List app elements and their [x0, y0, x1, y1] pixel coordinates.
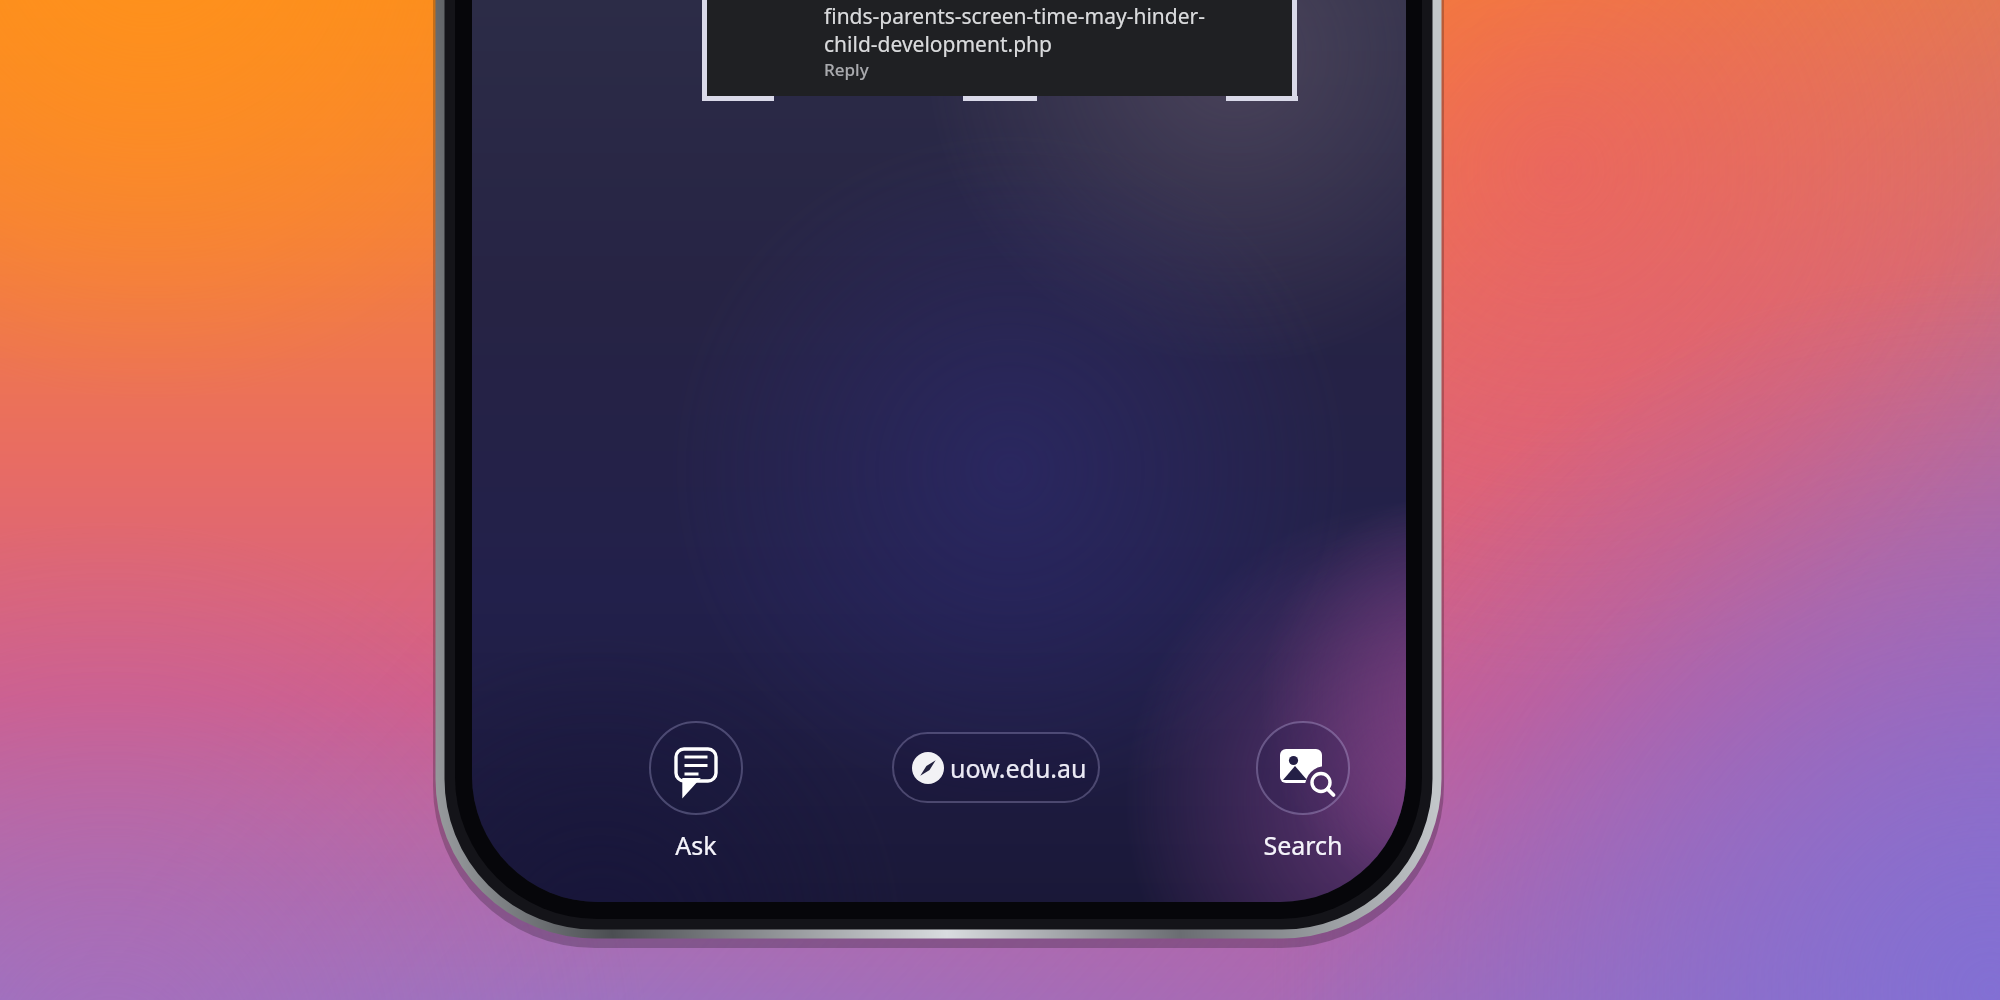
staticText: uow.edu.au: [950, 751, 1087, 785]
staticText: Reply: [824, 58, 869, 81]
staticText: www.uow.edu.au/media/2023/research- find…: [824, 0, 1218, 58]
button[interactable]: Ask: [634, 713, 758, 863]
button[interactable]: uow.edu.au address bar: [893, 733, 1099, 802]
button[interactable]: Search: [1241, 713, 1365, 863]
staticText: Ask: [546, 828, 846, 871]
staticText: Search: [1153, 828, 1453, 871]
button[interactable]: Reply: [820, 46, 950, 88]
